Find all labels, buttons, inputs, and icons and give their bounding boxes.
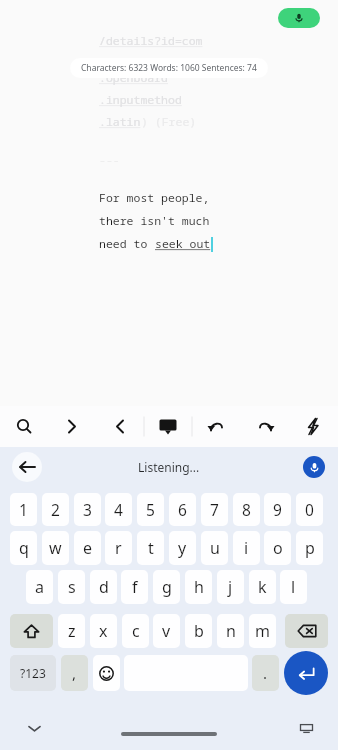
button[interactable]: Switch keyboard [296,718,316,738]
button[interactable]: w [42,531,69,565]
button[interactable]: Symbols [10,655,56,691]
button[interactable]: a [26,570,53,604]
staticText: 9 [273,499,282,520]
staticText: w [49,537,62,559]
button[interactable]: p [296,531,323,565]
button[interactable]: Enter [284,651,328,695]
staticText: t [148,537,154,559]
staticText: . [263,663,268,683]
staticText: f [132,576,138,598]
button[interactable]: y [169,531,196,565]
staticText: Listening... [138,459,200,475]
staticText: ) (Free) [141,114,197,130]
staticText: h [194,576,204,598]
staticText: ?123 [20,665,46,681]
button[interactable]: k [249,570,276,604]
staticText: .latin [99,114,141,130]
button[interactable]: Backspace [285,614,328,648]
button[interactable]: x [90,614,117,648]
button[interactable]: Search [0,406,49,447]
staticText: s [68,576,76,598]
button[interactable]: 1 [10,493,37,526]
button[interactable]: 3 [74,493,101,526]
button[interactable]: Hide keyboard [24,718,44,738]
staticText: y [178,537,187,559]
staticText: l [291,576,296,598]
button[interactable]: 7 [201,493,228,526]
staticText: .inputmethod [99,92,182,108]
staticText: 6 [178,499,187,520]
staticText: 2 [51,499,60,520]
staticText: p [305,537,315,559]
staticText: a [35,576,44,598]
button[interactable]: l [280,570,307,604]
button[interactable]: m [249,614,276,648]
staticText: , [72,663,77,683]
button[interactable]: i [233,531,260,565]
staticText: u [210,537,220,559]
button[interactable]: Shortcut [290,406,338,447]
button[interactable]: s [58,570,85,604]
button[interactable]: Back [12,452,42,482]
button[interactable]: n [217,614,244,648]
button[interactable]: h [185,570,212,604]
button[interactable]: 6 [169,493,196,526]
staticText: there isn't much [99,213,210,229]
button[interactable]: u [201,531,228,565]
staticText: 0 [305,499,314,520]
staticText: q [19,537,29,559]
staticText: For most people, [99,190,210,206]
button[interactable]: 0 [296,493,323,526]
staticText: i [244,537,249,559]
button[interactable]: j [217,570,244,604]
button[interactable]: t [137,531,164,565]
button[interactable]: 9 [264,493,291,526]
button[interactable]: q [10,531,37,565]
button[interactable]: g [153,570,180,604]
button[interactable]: d [90,570,117,604]
staticText: m [255,620,270,642]
staticText: z [68,620,76,642]
staticText: Characters: 6323 Words: 1060 Sentences: … [81,62,257,74]
button[interactable]: 4 [105,493,132,526]
button[interactable]: z [58,614,85,648]
staticText: 4 [114,499,123,520]
button[interactable]: b [185,614,212,648]
staticText: b [194,620,204,642]
staticText: 1 [19,499,28,520]
staticText: j [228,576,233,598]
button[interactable]: Period [252,655,279,691]
staticText: o [273,537,283,559]
button[interactable]: e [74,531,101,565]
staticText: need to [99,236,155,252]
staticText: v [162,620,171,642]
staticText: n [226,620,236,642]
button[interactable]: r [105,531,132,565]
button[interactable]: 5 [137,493,164,526]
staticText: /details?id=com [99,33,203,49]
button[interactable]: Emoji [93,655,120,691]
button[interactable]: Comma [61,655,88,691]
button[interactable]: Voice input active [278,8,320,28]
button[interactable]: Keyboard [146,406,194,447]
button[interactable]: 8 [233,493,260,526]
staticText: k [258,576,267,598]
button[interactable]: Next [98,406,146,447]
button[interactable]: o [264,531,291,565]
staticText: .openboard [99,70,168,86]
button[interactable]: Microphone [303,456,325,478]
button[interactable]: Previous [49,406,98,447]
button[interactable]: Undo [194,406,242,447]
button[interactable]: c [122,614,149,648]
staticText: d [99,576,109,598]
staticText: e [83,537,93,559]
button[interactable]: Redo [242,406,290,447]
button[interactable]: f [121,570,148,604]
button[interactable]: v [153,614,180,648]
button[interactable]: Characters: 6323 Words: 1060 Sentences: … [70,58,268,78]
staticText: seek out [155,236,211,252]
button[interactable]: Shift [10,614,53,648]
staticText: 7 [210,499,219,520]
button[interactable]: 2 [42,493,69,526]
